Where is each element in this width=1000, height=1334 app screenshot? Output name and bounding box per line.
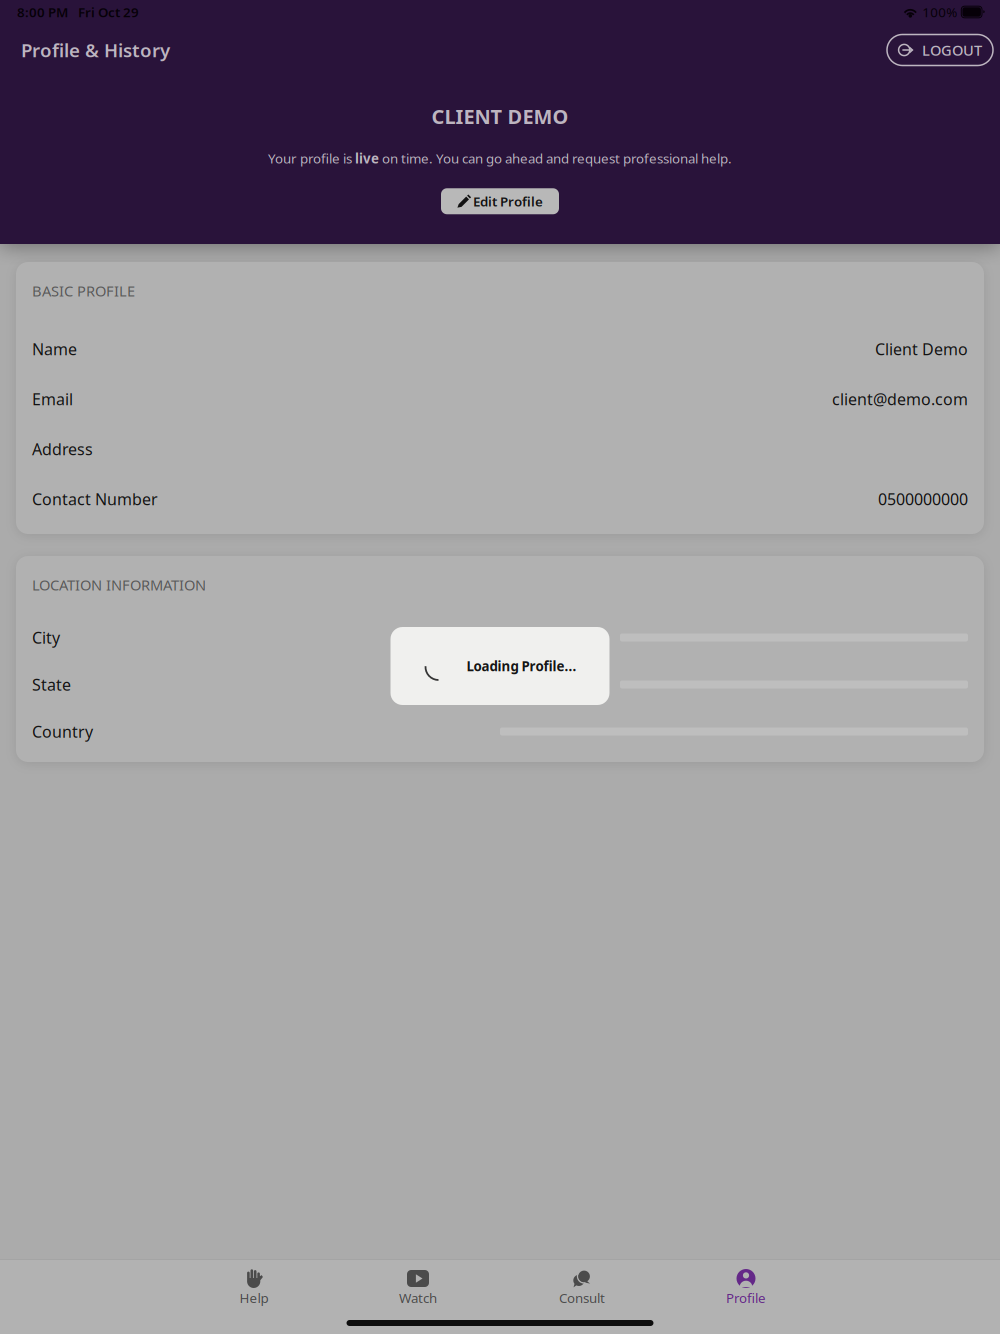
staticText: Your profile is live on time. You can go…	[268, 150, 732, 167]
staticText: CLIENT DEMO	[431, 103, 568, 130]
staticText: 100%	[922, 3, 957, 21]
staticText: Client Demo	[875, 338, 968, 360]
staticText: 8:00 PM	[17, 3, 68, 21]
staticText: Watch	[399, 1289, 437, 1307]
button[interactable]: Watch	[336, 1260, 500, 1308]
staticText: State	[32, 674, 71, 695]
staticText: Name	[32, 338, 77, 360]
staticText: Consult	[559, 1289, 605, 1307]
button[interactable]: Edit Profile	[441, 188, 559, 214]
staticText: client@demo.com	[832, 388, 968, 410]
staticText: Profile	[726, 1289, 766, 1307]
staticText: Profile & History	[21, 38, 170, 62]
button[interactable]: Profile	[664, 1260, 828, 1308]
button[interactable]: LOGOUT	[887, 34, 993, 65]
staticText: Help	[239, 1289, 268, 1307]
button[interactable]: Consult	[500, 1260, 664, 1308]
staticText: Fri Oct 29	[78, 3, 139, 21]
staticText: 0500000000	[878, 488, 968, 510]
staticText: City	[32, 627, 60, 648]
staticText: Contact Number	[32, 488, 158, 510]
staticText: Loading Profile...	[466, 657, 576, 675]
staticText: Email	[32, 388, 73, 410]
staticText: Address	[32, 438, 93, 460]
button[interactable]: Help	[172, 1260, 336, 1308]
staticText: Country	[32, 721, 93, 742]
staticText: LOCATION INFORMATION	[32, 575, 206, 594]
staticText: Edit Profile	[473, 192, 543, 210]
staticText: BASIC PROFILE	[32, 281, 135, 300]
staticText: LOGOUT	[922, 40, 982, 60]
